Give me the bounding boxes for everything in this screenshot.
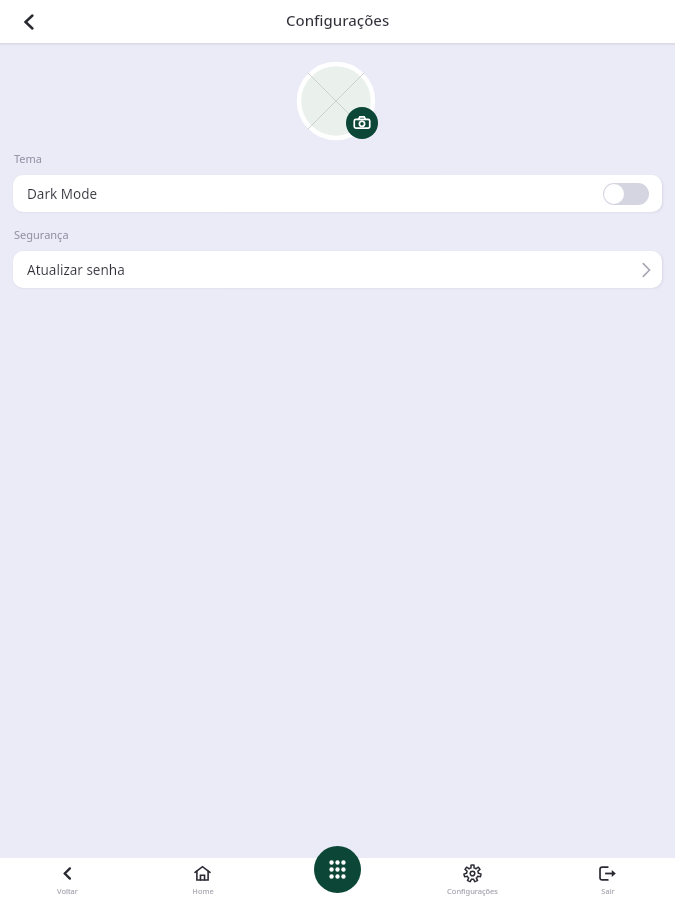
staticText: Atualizar senha [27, 261, 125, 279]
button[interactable]: Sair [540, 858, 675, 900]
button[interactable]: Home [135, 858, 270, 900]
staticText: Sair [601, 886, 615, 896]
button[interactable]: Change profile photo [346, 107, 378, 139]
button[interactable]: Back [12, 5, 46, 39]
button[interactable]: Dark Mode [13, 175, 662, 212]
button[interactable]: Voltar [0, 858, 135, 900]
staticText: Home [192, 886, 214, 896]
button[interactable]: Apps menu [314, 846, 361, 893]
staticText: Voltar [57, 886, 78, 896]
staticText: Configurações [286, 10, 390, 30]
staticText: Dark Mode [27, 185, 98, 203]
button[interactable]: Dark Mode toggle, off [603, 183, 649, 205]
button[interactable]: Atualizar senha [13, 251, 662, 288]
staticText: Configurações [447, 886, 498, 896]
button[interactable]: Configurações [405, 858, 540, 900]
staticText: Segurança [14, 227, 69, 242]
staticText: Tema [14, 151, 43, 166]
